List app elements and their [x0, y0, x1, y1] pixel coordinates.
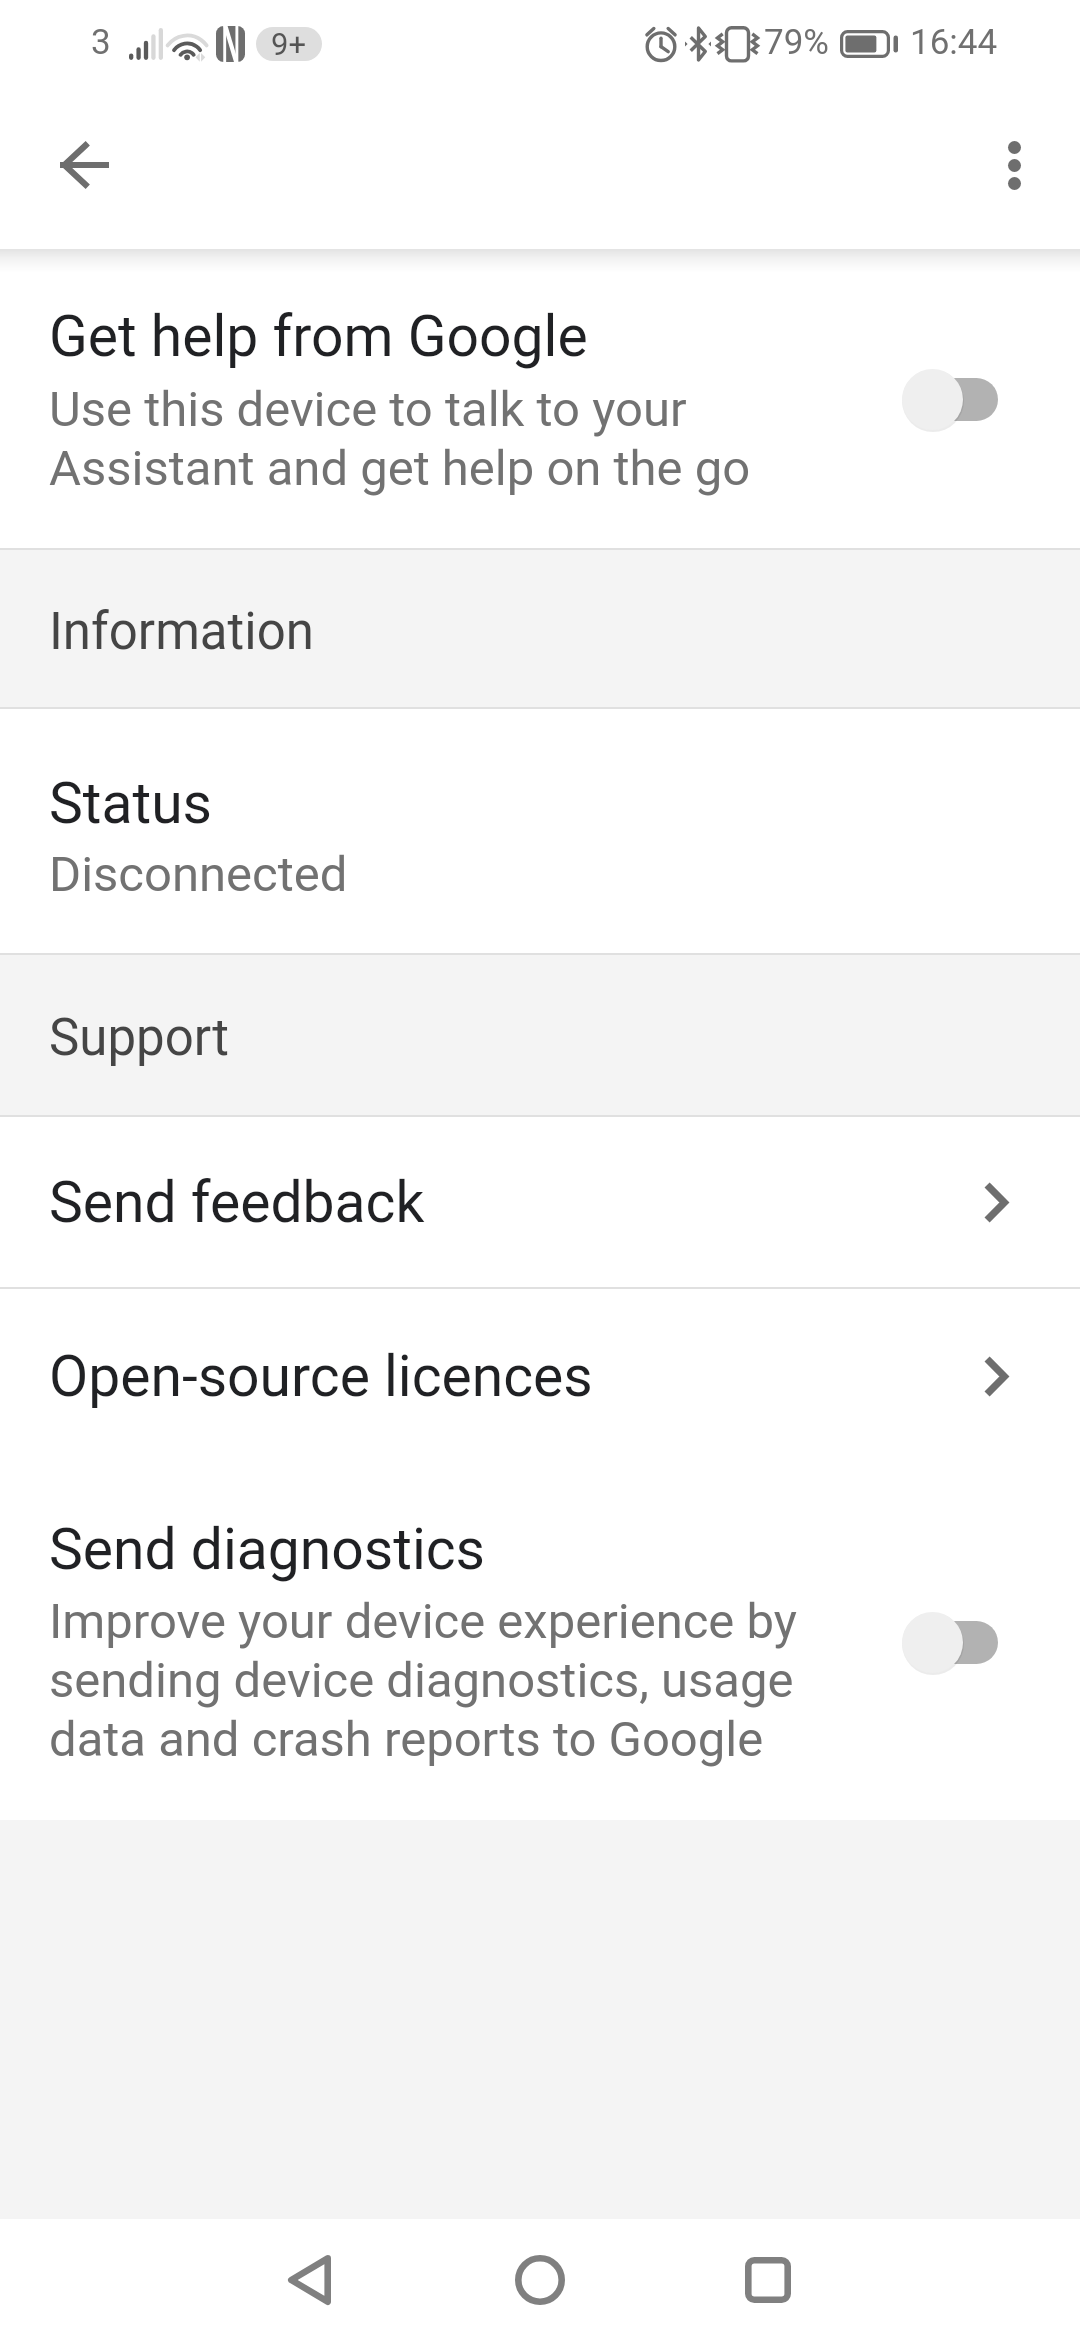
staticText: sending device diagnostics, usage: [49, 1650, 794, 1709]
staticText: Improve your device experience by: [49, 1591, 797, 1650]
button[interactable]: Send feedback: [0, 1117, 1080, 1287]
staticText: Disconnected: [49, 836, 348, 905]
staticText: Support: [49, 1008, 229, 1068]
staticText: Send diagnostics: [49, 1515, 486, 1583]
staticText: Use this device to talk to your: [49, 379, 687, 438]
button[interactable]: Status: [0, 709, 1080, 953]
staticText: Status: [49, 768, 212, 837]
staticText: Get help from Google: [49, 302, 588, 370]
button[interactable]: Home: [440, 2219, 640, 2340]
staticText: 16:44: [910, 22, 998, 63]
button[interactable]: Get help from Google: [0, 250, 1080, 548]
staticText: Open-source licences: [49, 1343, 986, 1410]
staticText: 9+: [271, 27, 307, 60]
button[interactable]: Back: [209, 2219, 409, 2340]
staticText: data and crash reports to Google: [49, 1709, 764, 1768]
button[interactable]: Recent apps: [668, 2219, 868, 2340]
staticText: Assistant and get help on the go: [49, 438, 751, 497]
staticText: 79%: [764, 22, 829, 63]
button[interactable]: Navigate up: [20, 101, 148, 229]
button[interactable]: Open-source licences: [0, 1289, 1080, 1463]
button[interactable]: Send diagnostics: [0, 1463, 1080, 1820]
staticText: Send feedback: [49, 1169, 986, 1236]
staticText: Information: [49, 602, 314, 662]
staticText: 3: [91, 22, 111, 63]
button[interactable]: More options: [950, 101, 1078, 229]
